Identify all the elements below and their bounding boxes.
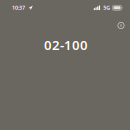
button[interactable]: Info <box>111 15 130 35</box>
staticText: 10:37 <box>12 4 25 11</box>
staticText: 5G <box>103 4 110 11</box>
staticText: 02-100 <box>44 36 88 54</box>
